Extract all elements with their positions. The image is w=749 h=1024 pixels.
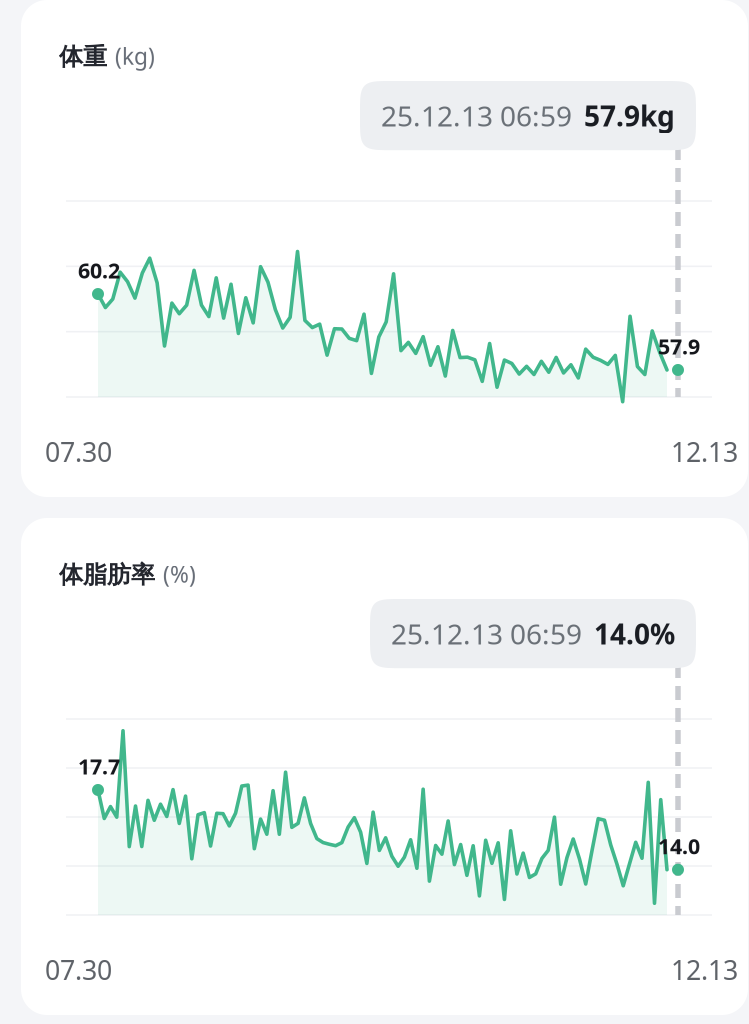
staticText: 57.9 [658,332,700,360]
button[interactable]: 25.12.13 06:59 [370,599,696,668]
staticText: 07.30 [45,952,112,987]
staticText: 25.12.13 06:59 [391,615,582,652]
staticText: 57.9kg [584,97,675,134]
staticText: 12.13 [671,952,738,987]
staticText: 体重 [59,42,107,72]
button[interactable]: 25.12.13 06:59 [360,81,696,150]
staticText: 14.0 [658,832,700,860]
staticText: 14.0% [594,615,675,652]
staticText: 17.7 [78,752,120,780]
staticText: (%) [163,559,196,589]
staticText: 体脂肪率 [59,560,155,590]
staticText: 25.12.13 06:59 [381,97,572,134]
staticText: 07.30 [45,434,112,469]
staticText: 60.2 [78,256,120,284]
staticText: (kg) [115,41,155,71]
staticText: 12.13 [671,434,738,469]
